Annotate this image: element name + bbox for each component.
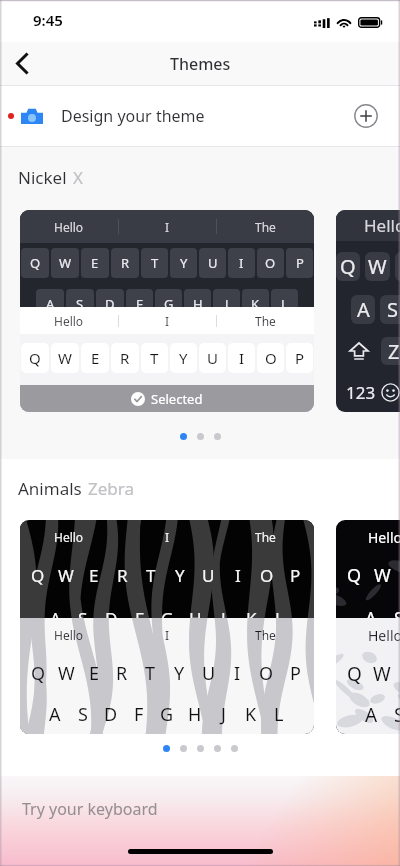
staticText: The [255, 219, 276, 235]
staticText: Q [30, 254, 41, 272]
staticText: Hello [54, 529, 84, 545]
staticText: S [76, 295, 84, 313]
staticText: U [202, 564, 215, 587]
staticText: R [117, 564, 128, 587]
button[interactable]: Hello [20, 520, 314, 734]
staticText: Hello [54, 627, 84, 643]
staticText: 9:45 [33, 10, 63, 30]
staticText: G [161, 607, 174, 630]
staticText: F [136, 295, 143, 313]
staticText: U [208, 254, 218, 272]
button[interactable]: Hello [336, 520, 400, 734]
staticText: E [89, 564, 99, 587]
button[interactable]: Add theme [349, 99, 383, 133]
staticText: I [235, 564, 241, 587]
staticText: H [193, 295, 203, 313]
staticText: O [259, 661, 274, 686]
staticText: Z [388, 338, 400, 365]
staticText: Hello [368, 626, 400, 645]
staticText: G [160, 702, 174, 727]
staticText: Y [179, 348, 188, 368]
staticText: P [295, 348, 305, 368]
staticText: U [207, 348, 218, 368]
staticText: A [49, 702, 61, 727]
staticText: W [58, 348, 72, 368]
staticText: I [234, 661, 241, 686]
staticText: Y [174, 661, 185, 686]
staticText: Q [29, 348, 41, 368]
staticText: D [104, 702, 118, 727]
staticText: X [73, 166, 83, 189]
staticText: H [189, 607, 202, 630]
staticText: I [165, 627, 170, 643]
button[interactable]: Back [0, 42, 43, 85]
staticText: E [89, 661, 100, 686]
staticText: P [290, 661, 301, 686]
staticText: L [275, 607, 284, 630]
staticText: Hello [368, 528, 400, 547]
staticText: W [374, 563, 391, 588]
staticText: Q [31, 661, 46, 686]
button[interactable]: Hello [20, 210, 314, 412]
staticText: Q [31, 564, 45, 587]
staticText: G [164, 295, 174, 313]
staticText: W [58, 661, 75, 686]
staticText: R [120, 348, 130, 368]
staticText: K [251, 295, 260, 313]
staticText: O [260, 564, 274, 587]
staticText: Themes [170, 53, 231, 75]
staticText: A [365, 606, 377, 631]
staticText: O [265, 254, 276, 272]
staticText: I [239, 348, 245, 368]
staticText: Q [340, 253, 356, 280]
staticText: E [91, 348, 100, 368]
staticText: Q [347, 563, 362, 588]
staticText: L [274, 702, 284, 727]
staticText: Design your theme [61, 105, 205, 127]
staticText: S [394, 606, 400, 631]
staticText: I [165, 313, 170, 329]
staticText: R [116, 661, 128, 686]
staticText: H [188, 702, 202, 727]
staticText: S [78, 607, 88, 630]
staticText: Y [180, 254, 188, 272]
staticText: P [290, 564, 301, 587]
staticText: T [150, 348, 159, 368]
staticText: Hello [54, 313, 84, 329]
staticText: F [134, 702, 144, 727]
staticText: S [387, 296, 398, 323]
staticText: K [246, 607, 257, 630]
staticText: S [394, 702, 400, 728]
button[interactable]: Hello [336, 210, 400, 412]
staticText: W [373, 661, 391, 687]
staticText: L [281, 295, 288, 313]
staticText: Q [347, 661, 362, 687]
staticText: The [255, 627, 276, 643]
staticText: K [245, 702, 257, 727]
staticText: O [265, 348, 277, 368]
staticText: Animals [18, 477, 82, 500]
staticText: Nickel [18, 166, 67, 189]
staticText: The [255, 529, 276, 545]
staticText: J [225, 295, 229, 313]
staticText: D [105, 607, 118, 630]
staticText: 123 [346, 381, 376, 404]
staticText: The [255, 313, 276, 329]
staticText: S [78, 702, 88, 727]
staticText: A [365, 702, 378, 728]
staticText: R [121, 254, 130, 272]
staticText: T [146, 564, 156, 587]
staticText: F [135, 607, 144, 630]
staticText: Try your keyboard [22, 798, 158, 820]
staticText: E [91, 254, 99, 272]
staticText: Hello [364, 214, 400, 237]
staticText: J [221, 702, 226, 727]
staticText: I [165, 529, 170, 545]
staticText: A [50, 607, 61, 630]
button[interactable]: Design your theme [0, 86, 400, 146]
staticText: W [368, 253, 387, 280]
staticText: W [58, 564, 74, 587]
staticText: T [151, 254, 159, 272]
staticText: Hello [54, 219, 84, 235]
staticText: T [145, 661, 156, 686]
